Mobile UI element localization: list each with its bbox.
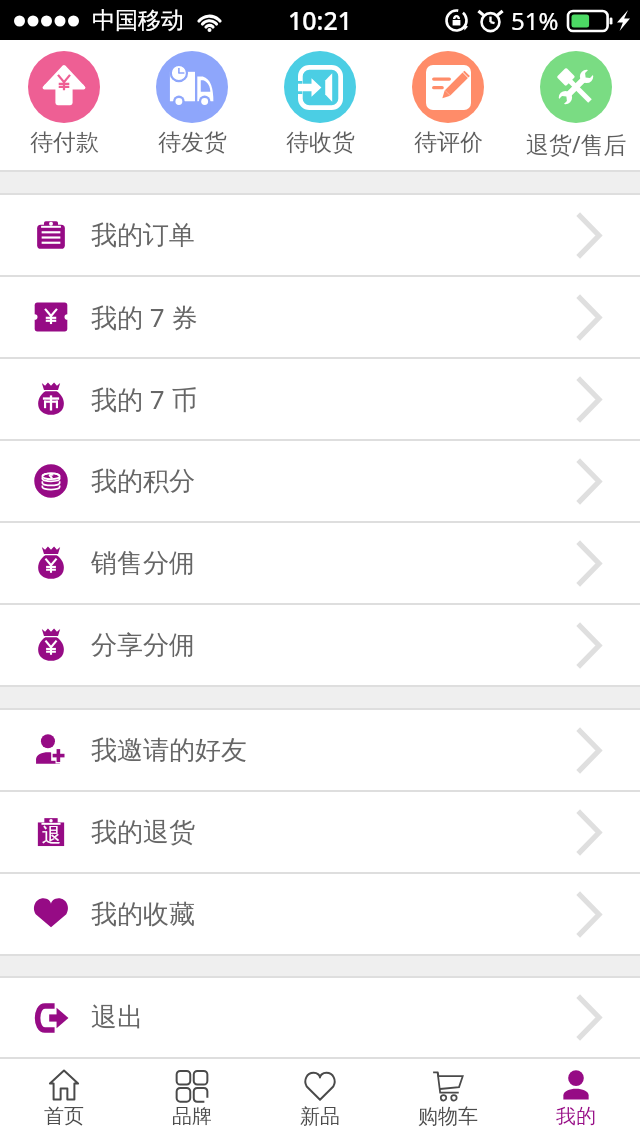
button[interactable]: 待付款 [0, 40, 128, 170]
staticText: 待发货 [158, 128, 227, 157]
button[interactable]: 销售分佣 [0, 523, 640, 603]
staticText: 购物车 [418, 1104, 478, 1129]
staticText: 新品 [300, 1104, 340, 1129]
button[interactable]: 我的收藏 [0, 874, 640, 954]
button[interactable]: 首页 [0, 1059, 128, 1136]
button[interactable]: 待发货 [128, 40, 256, 170]
staticText: 我的 7 币 [91, 381, 198, 417]
staticText: 退出 [91, 1001, 143, 1034]
staticText: 我的收藏 [91, 898, 195, 931]
button[interactable]: 我邀请的好友 [0, 710, 640, 790]
button[interactable]: 待收货 [256, 40, 384, 170]
button[interactable]: 分享分佣 [0, 605, 640, 685]
button[interactable]: 我的 [512, 1059, 640, 1136]
button[interactable]: 待评价 [384, 40, 512, 170]
staticText: 51% [511, 4, 559, 37]
staticText: 退 [42, 824, 61, 848]
staticText: 销售分佣 [91, 547, 195, 580]
staticText: 分享分佣 [91, 629, 195, 662]
staticText: 我的积分 [91, 465, 195, 498]
staticText: 我的 [556, 1104, 596, 1129]
button[interactable]: 品牌 [128, 1059, 256, 1136]
button[interactable]: 新品 [256, 1059, 384, 1136]
staticText: 待收货 [286, 128, 355, 157]
staticText: 退货/售后 [526, 128, 627, 159]
staticText: 品牌 [172, 1104, 212, 1129]
staticText: 我邀请的好友 [91, 734, 247, 767]
staticText: 我的退货 [91, 816, 195, 849]
button[interactable]: 购物车 [384, 1059, 512, 1136]
button[interactable]: 我的订单 [0, 195, 640, 275]
button[interactable]: 退出 [0, 978, 640, 1057]
staticText: 中国移动 [92, 6, 184, 35]
staticText: 待付款 [30, 128, 99, 157]
button[interactable]: 我的 7 币 [0, 359, 640, 439]
button[interactable]: 我的积分 [0, 441, 640, 521]
button[interactable]: 退货/售后 [512, 40, 640, 170]
staticText: 我的 7 券 [91, 299, 198, 335]
staticText: 我的订单 [91, 219, 195, 252]
button[interactable]: 我的 7 券 [0, 277, 640, 357]
staticText: 首页 [44, 1104, 84, 1129]
button[interactable]: 退 [0, 792, 640, 872]
staticText: 10:21 [288, 3, 353, 37]
staticText: 待评价 [414, 128, 483, 157]
